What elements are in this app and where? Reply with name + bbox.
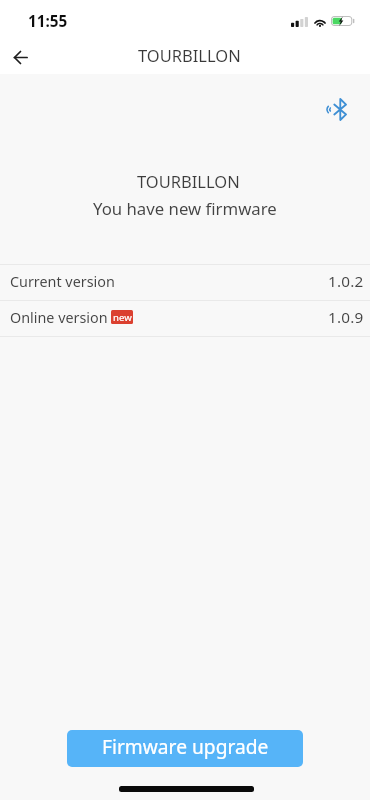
staticText: Online version bbox=[10, 308, 108, 328]
button[interactable]: Online version bbox=[0, 301, 370, 336]
staticText: new bbox=[113, 311, 132, 324]
button[interactable]: Firmware upgrade bbox=[67, 730, 303, 767]
staticText: TOURBILLON bbox=[138, 44, 241, 66]
button[interactable]: Back bbox=[3, 40, 37, 74]
staticText: 1.0.9 bbox=[328, 307, 364, 328]
staticText: You have new firmware bbox=[93, 197, 277, 220]
staticText: 11:55 bbox=[28, 11, 68, 32]
staticText: 1.0.2 bbox=[328, 271, 364, 292]
button[interactable]: Current version bbox=[0, 265, 370, 300]
staticText: TOURBILLON bbox=[137, 170, 240, 192]
staticText: Current version bbox=[10, 272, 115, 292]
button[interactable]: Bluetooth connected bbox=[326, 98, 347, 121]
staticText: Firmware upgrade bbox=[102, 733, 269, 759]
